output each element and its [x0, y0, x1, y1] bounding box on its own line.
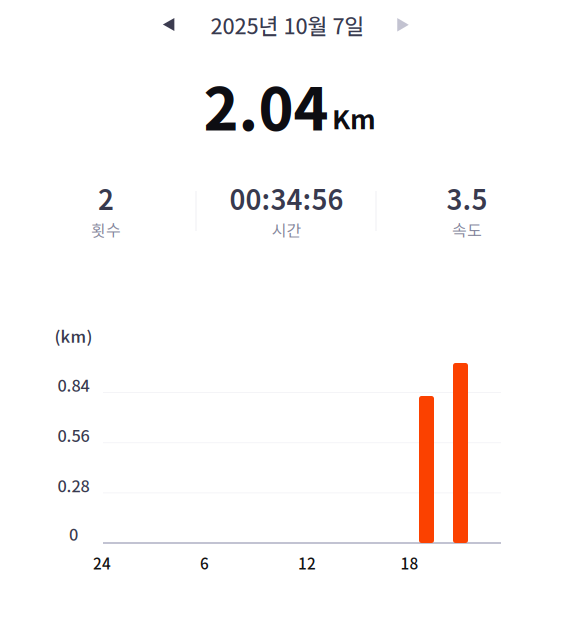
staticText: 0.84	[57, 373, 89, 396]
staticText: 2.04	[203, 62, 328, 147]
staticText: 속도	[452, 218, 482, 241]
staticText: 0.28	[57, 473, 89, 497]
staticText: 0.56	[57, 423, 89, 447]
staticText: Km	[332, 98, 376, 137]
staticText: 0	[69, 522, 78, 545]
staticText: 2025년 10월 7일	[210, 9, 364, 40]
staticText: 2	[98, 178, 114, 218]
staticText: 12	[298, 552, 316, 574]
button[interactable]: Previous day	[147, 4, 191, 44]
staticText: 24	[93, 552, 111, 574]
button[interactable]: Next day	[381, 5, 425, 45]
staticText: 00:34:56	[229, 178, 343, 218]
staticText: 18	[400, 552, 418, 574]
staticText: 시간	[271, 218, 301, 241]
staticText: 횟수	[91, 218, 121, 241]
staticText: (km)	[54, 324, 92, 347]
staticText: 3.5	[446, 178, 487, 218]
staticText: 6	[200, 552, 209, 574]
